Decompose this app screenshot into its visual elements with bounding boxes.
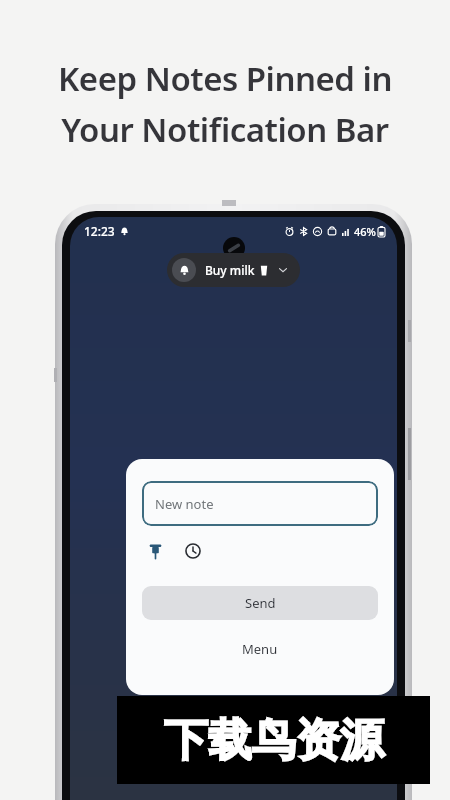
staticText: 下载鸟资源 <box>164 713 384 768</box>
staticText: Your Notification Bar <box>61 107 389 152</box>
staticText: Buy milk <box>205 262 255 278</box>
staticText: New note <box>155 495 214 513</box>
staticText: 12:23 <box>84 223 115 239</box>
button[interactable]: Buy milk <box>167 253 300 287</box>
button[interactable]: New note <box>142 481 378 526</box>
staticText: Keep Notes Pinned in <box>58 56 392 101</box>
button[interactable]: Send <box>142 586 378 620</box>
button[interactable]: Pin note <box>142 538 168 564</box>
button[interactable]: Menu <box>142 636 378 662</box>
staticText: 46% <box>354 224 376 239</box>
staticText: Send <box>245 594 276 612</box>
button[interactable]: Set reminder time <box>180 538 206 564</box>
staticText: Menu <box>242 640 278 658</box>
